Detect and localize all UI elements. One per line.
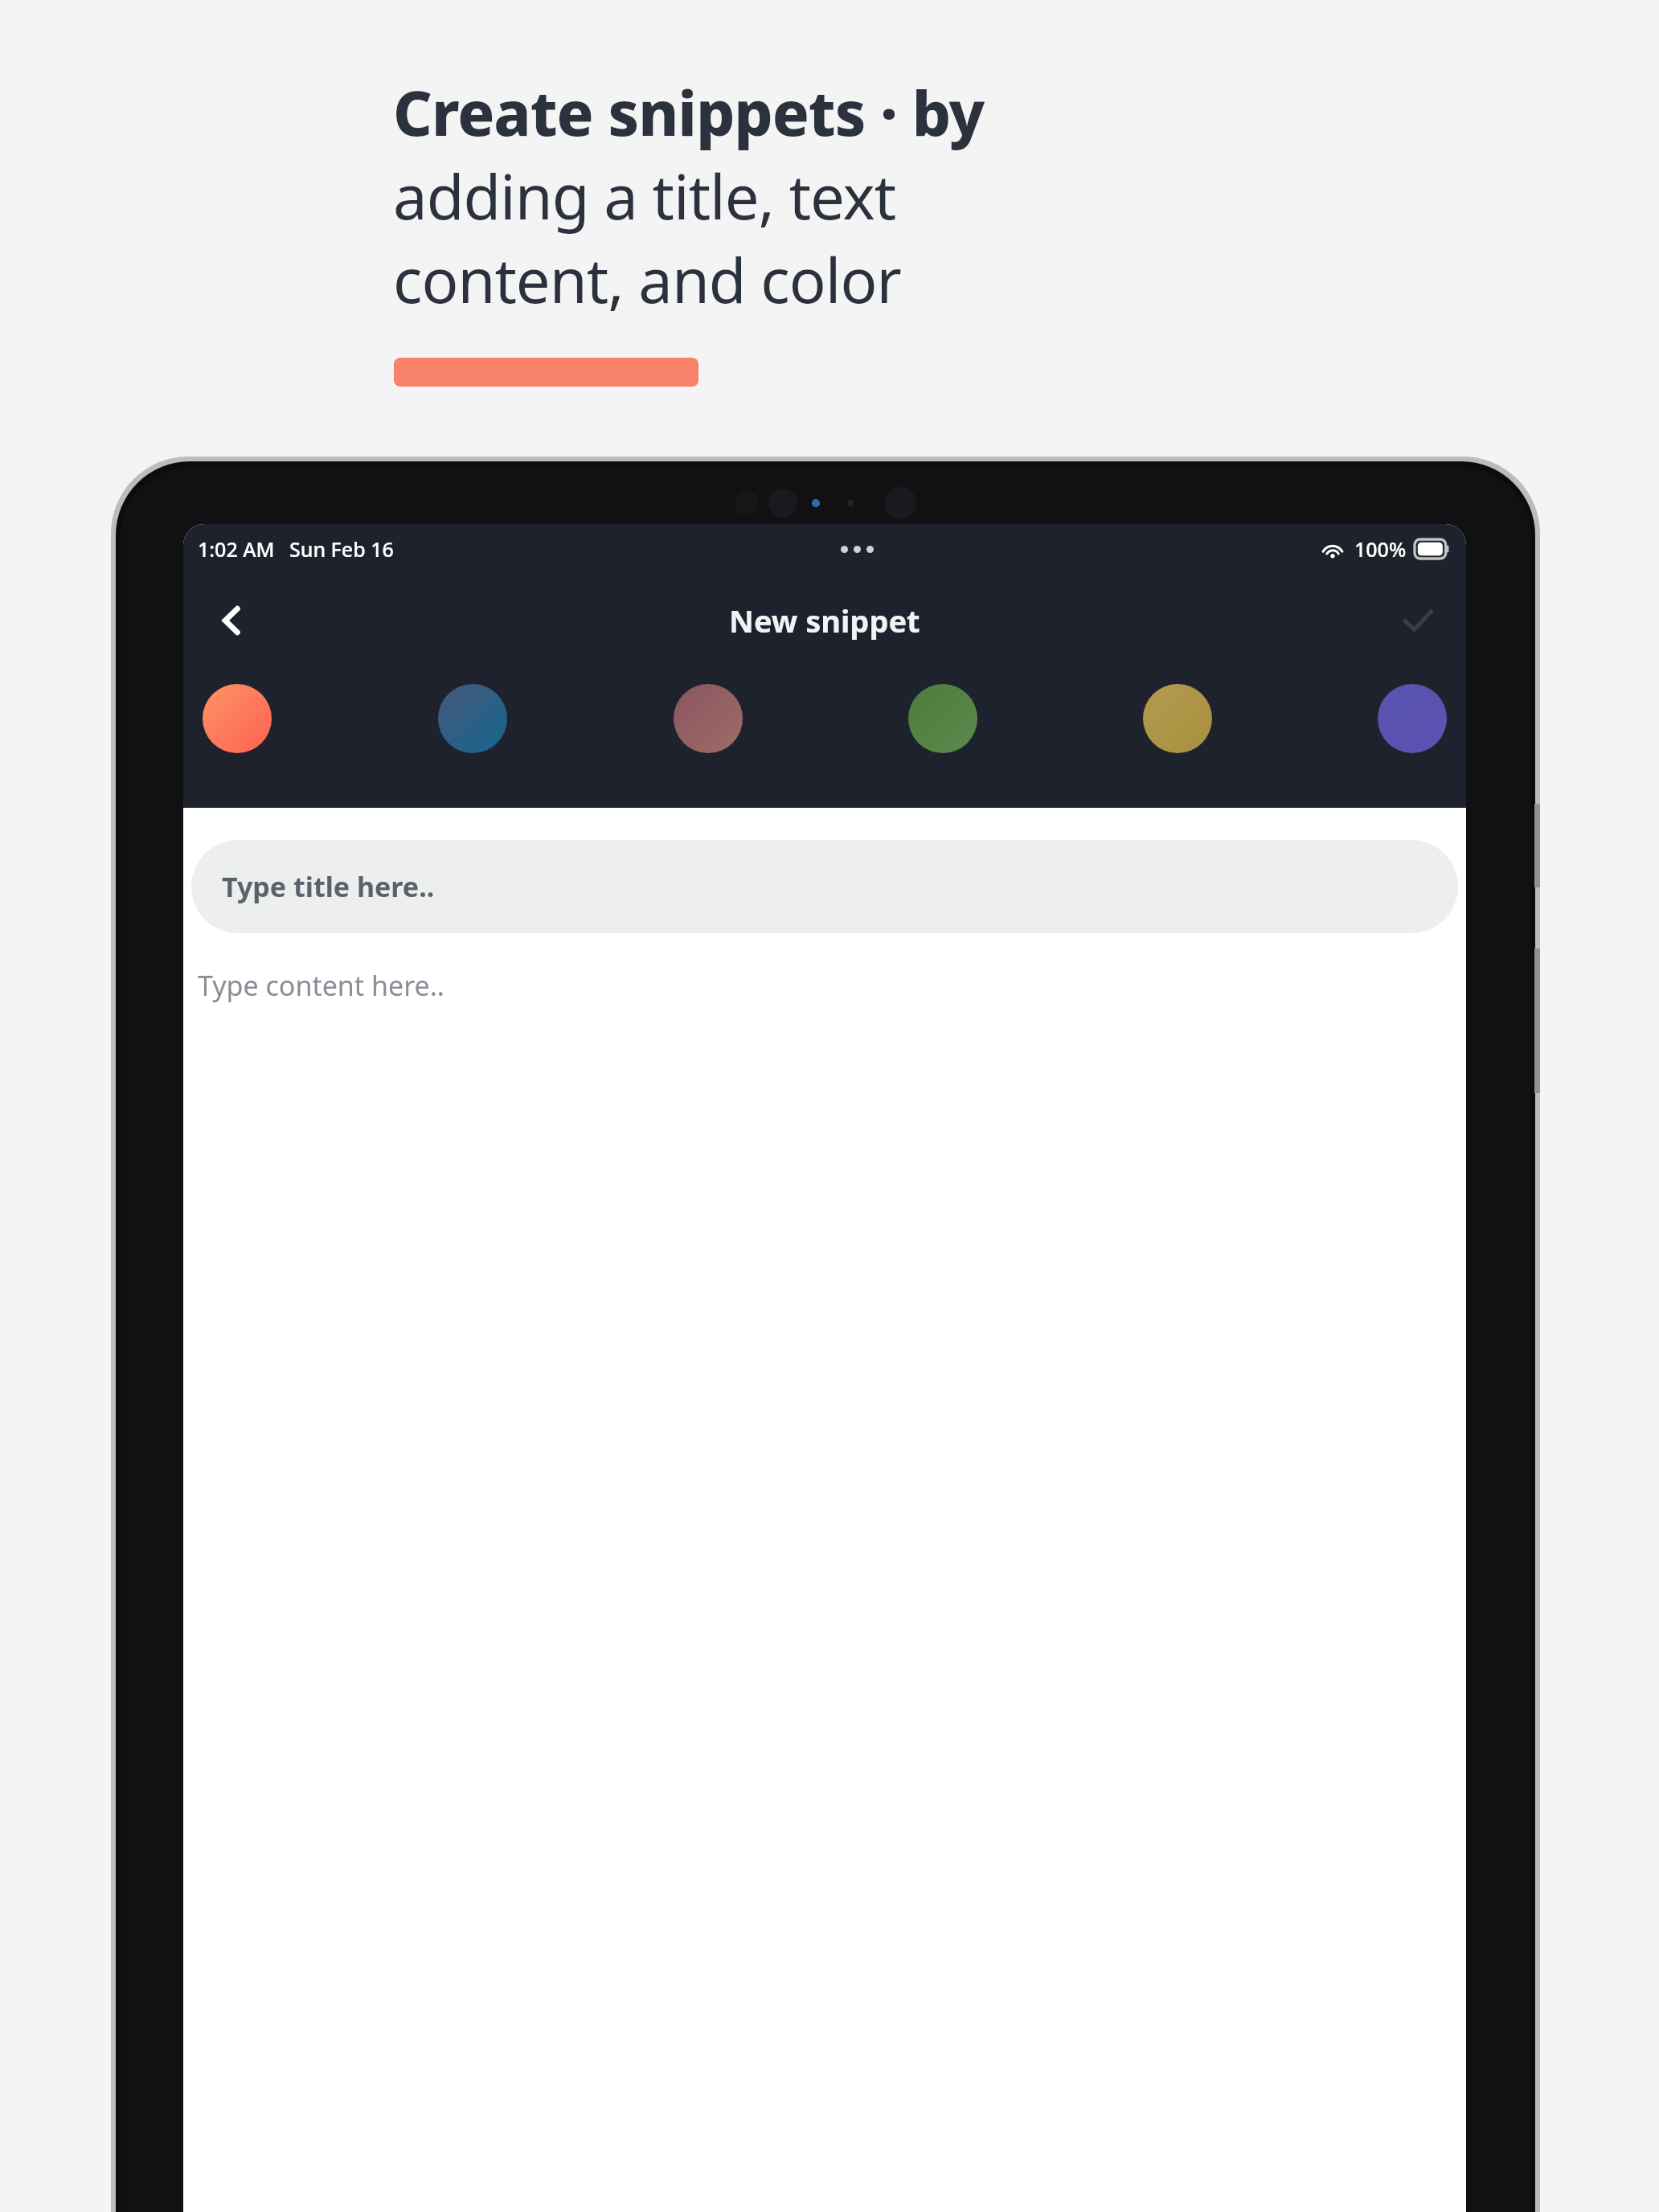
button[interactable]: Colour option 2 [438,684,507,753]
button[interactable]: Colour option 5 [1143,684,1212,753]
button[interactable]: Type content here.. [183,964,1466,2212]
button[interactable]: Save snippet [1370,574,1466,667]
button[interactable]: Colour option 6 [1378,684,1447,753]
button[interactable]: Colour option 1 [203,684,272,753]
staticText: content, and color [393,238,901,322]
staticText: Sun Feb 16 [289,535,394,563]
staticText: 100% [1354,535,1407,563]
staticText: New snippet [729,600,920,641]
staticText: Create snippets · by [393,71,985,154]
staticText: 1:02 AM [198,535,275,563]
staticText: Type title here.. [222,868,435,905]
button[interactable]: Colour option 3 [674,684,743,753]
staticText: adding a title, text [393,154,896,238]
staticText: Type content here.. [198,967,444,1004]
button[interactable]: Back [183,574,280,667]
button[interactable]: Colour option 4 [908,684,977,753]
button[interactable]: Type title here.. [191,840,1458,933]
